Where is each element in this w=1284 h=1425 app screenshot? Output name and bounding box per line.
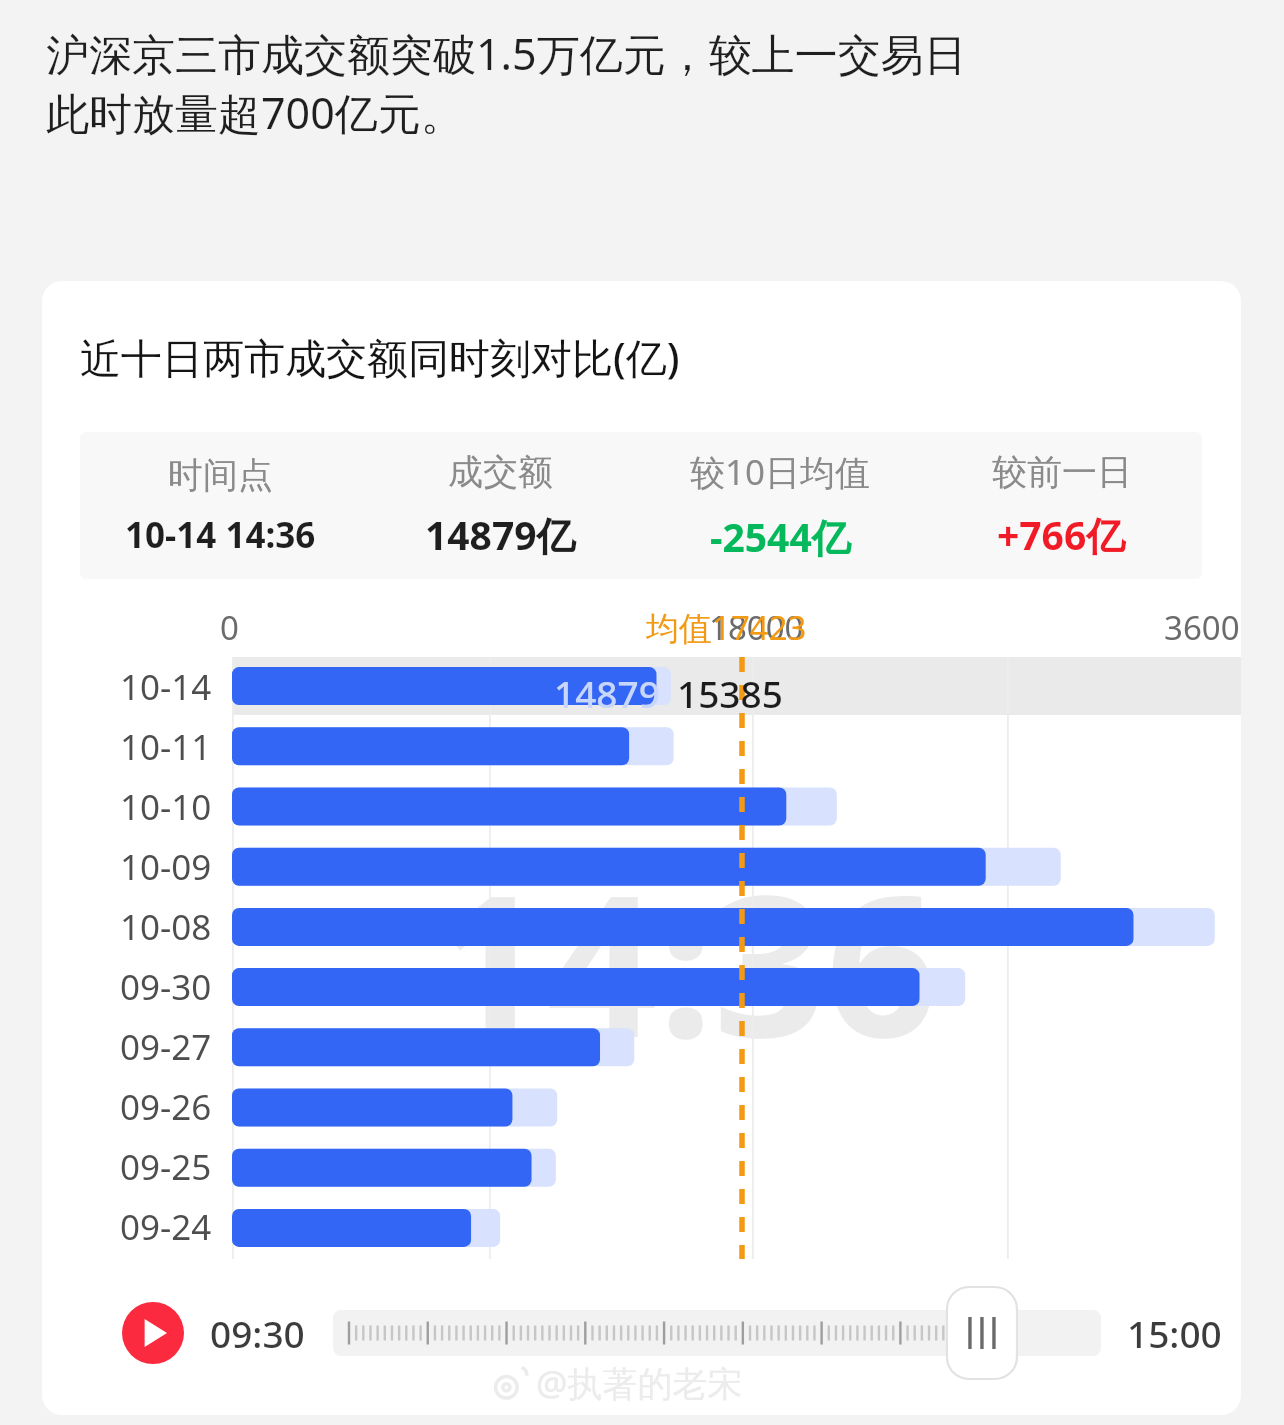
staticText: 10-09 xyxy=(120,843,212,891)
staticText: 09-26 xyxy=(120,1083,212,1131)
staticText: 14:36 xyxy=(434,827,938,1094)
button[interactable]: 10-11 xyxy=(42,717,1241,777)
button[interactable]: 09-30 xyxy=(42,957,1241,1017)
staticText: 09-30 xyxy=(120,963,212,1011)
staticText: 10-11 xyxy=(120,723,212,771)
staticText: 近十日两市成交额同时刻对比(亿) xyxy=(80,329,680,385)
staticText: 15:00 xyxy=(1127,1308,1222,1358)
staticText: 10-08 xyxy=(120,903,212,951)
staticText: 成交额 xyxy=(448,450,553,494)
button[interactable]: 09-25 xyxy=(42,1137,1241,1197)
button[interactable]: 09-24 xyxy=(42,1197,1241,1257)
button[interactable]: 09-26 xyxy=(42,1077,1241,1137)
button[interactable]: 10-09 xyxy=(42,837,1241,897)
button[interactable]: 10-08 xyxy=(42,897,1241,957)
staticText: 09:30 xyxy=(210,1308,305,1358)
button[interactable]: Play xyxy=(122,1302,184,1364)
staticText: 09-24 xyxy=(120,1203,212,1251)
staticText: 09-27 xyxy=(120,1023,212,1071)
staticText: 沪深京三市成交额突破1.5万亿元，较上一交易日 xyxy=(46,24,967,83)
button[interactable]: 时间点 xyxy=(80,432,1202,579)
staticText: -2544亿 xyxy=(710,510,851,563)
staticText: 10-14 14:36 xyxy=(125,511,316,559)
staticText: 较前一日 xyxy=(992,450,1132,494)
staticText: 09-25 xyxy=(120,1143,212,1191)
staticText: 此时放量超700亿元。 xyxy=(46,83,464,142)
button[interactable]: 09-27 xyxy=(42,1017,1241,1077)
staticText: 15385 xyxy=(677,668,783,718)
button[interactable]: 10-14 xyxy=(42,657,1241,717)
staticText: 均值17423 xyxy=(646,605,807,650)
staticText: 18000 xyxy=(709,605,804,650)
staticText: 较10日均值 xyxy=(690,448,871,496)
staticText: 14879 xyxy=(554,668,660,718)
staticText: @执著的老宋 xyxy=(536,1359,743,1407)
staticText: 时间点 xyxy=(168,453,273,497)
staticText: 10-14 xyxy=(120,663,212,711)
staticText: 10-10 xyxy=(120,783,212,831)
staticText: 36000 xyxy=(1164,605,1241,650)
staticText: 0 xyxy=(220,605,239,650)
button[interactable]: 10-10 xyxy=(42,777,1241,837)
staticText: 14879亿 xyxy=(425,508,576,561)
staticText: +766亿 xyxy=(997,508,1126,561)
